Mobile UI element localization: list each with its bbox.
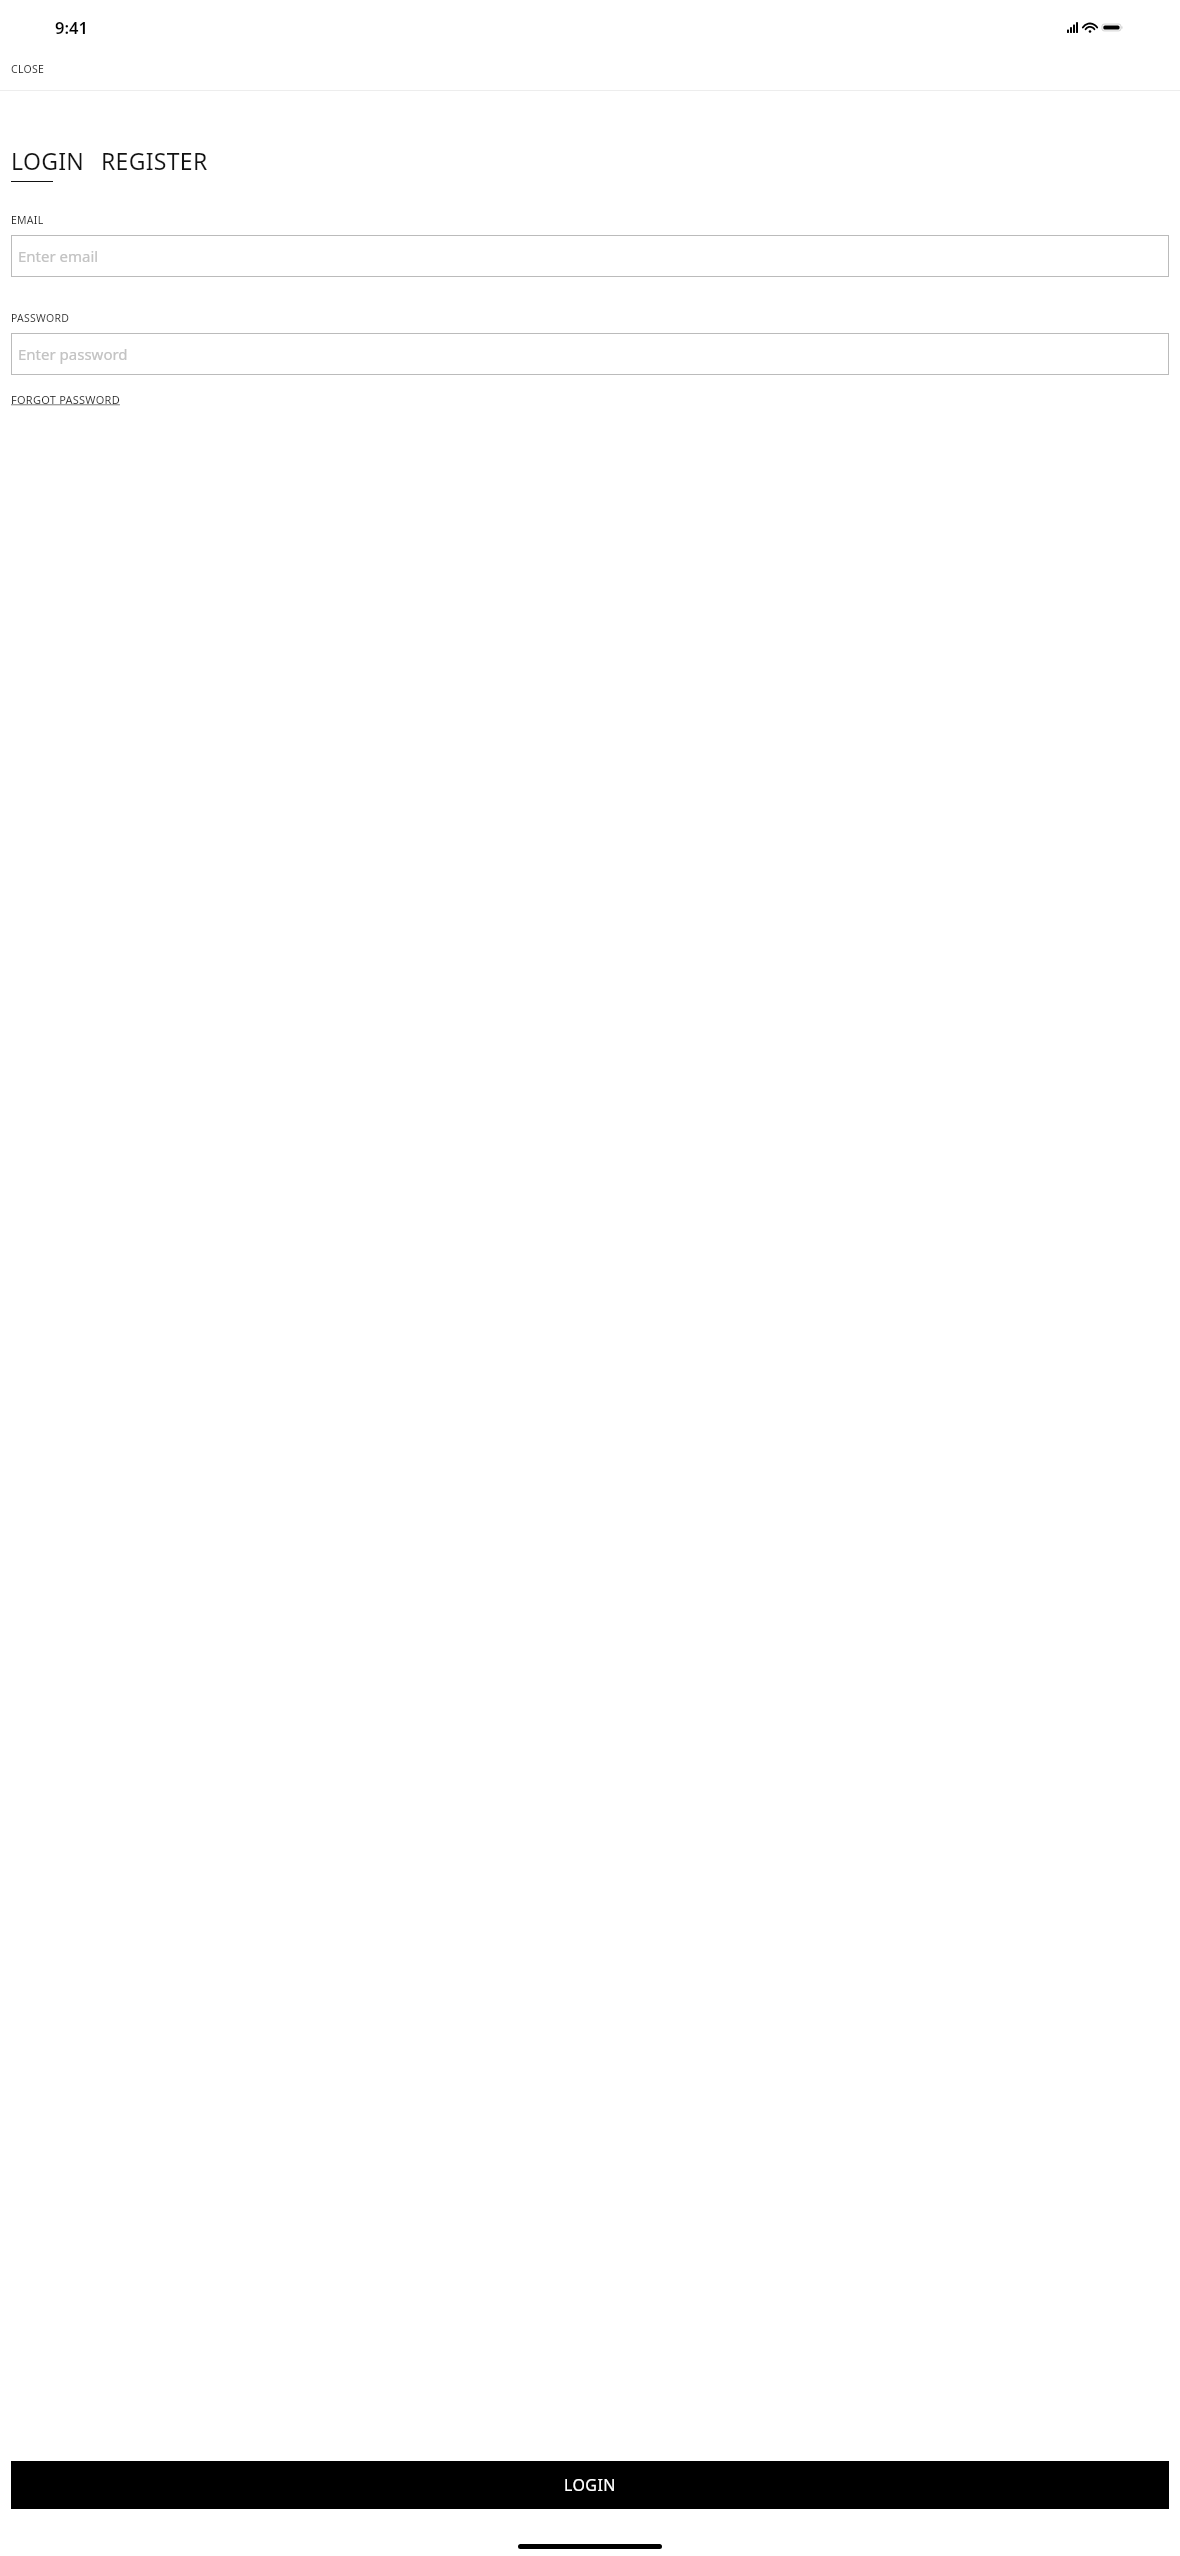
staticText: Enter email (18, 246, 99, 266)
staticText: Enter password (18, 344, 128, 364)
button[interactable]: LOGIN (11, 2461, 1169, 2509)
button[interactable]: LOGIN (11, 145, 85, 182)
staticText: LOGIN (564, 2474, 616, 2496)
staticText: CLOSE (11, 62, 44, 76)
button[interactable]: REGISTER (101, 145, 208, 182)
staticText: FORGOT PASSWORD (11, 392, 120, 407)
button[interactable]: Enter password (11, 333, 1169, 375)
staticText: LOGIN (11, 145, 85, 176)
staticText: 9:41 (55, 16, 88, 38)
staticText: REGISTER (101, 145, 208, 176)
button[interactable]: FORGOT PASSWORD (11, 392, 120, 407)
staticText: EMAIL (11, 213, 44, 227)
staticText: PASSWORD (11, 311, 70, 325)
button[interactable]: Enter email (11, 235, 1169, 277)
button[interactable]: CLOSE (0, 56, 55, 82)
